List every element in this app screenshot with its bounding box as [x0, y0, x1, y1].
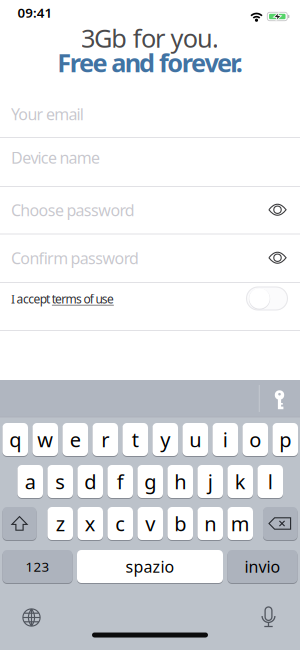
- button[interactable]: g: [137, 465, 163, 498]
- staticText: Your email: [11, 103, 84, 125]
- button[interactable]: Dictation: [251, 602, 285, 636]
- button[interactable]: o: [242, 423, 268, 456]
- button[interactable]: Next keyboard: [14, 600, 48, 634]
- button[interactable]: Show password: [256, 233, 298, 282]
- staticText: 123: [25, 558, 49, 575]
- button[interactable]: a: [17, 465, 43, 498]
- staticText: s: [55, 468, 65, 495]
- staticText: j: [208, 468, 213, 495]
- staticText: Choose password: [11, 199, 135, 221]
- button[interactable]: Device name: [0, 137, 300, 186]
- button[interactable]: y: [152, 423, 178, 456]
- staticText: p: [279, 426, 291, 453]
- staticText: n: [204, 510, 216, 537]
- button[interactable]: Shift: [2, 507, 36, 540]
- button[interactable]: f: [107, 465, 133, 498]
- button[interactable]: q: [2, 423, 28, 456]
- staticText: a: [25, 468, 36, 495]
- button[interactable]: w: [32, 423, 58, 456]
- staticText: Free and forever.: [57, 46, 243, 79]
- button[interactable]: 123: [2, 550, 72, 583]
- staticText: d: [84, 468, 96, 495]
- button[interactable]: Show password: [256, 186, 298, 233]
- button[interactable]: t: [122, 423, 148, 456]
- staticText: 09:41: [18, 4, 52, 21]
- staticText: x: [85, 510, 96, 537]
- staticText: m: [231, 510, 250, 537]
- staticText: y: [160, 426, 170, 453]
- button[interactable]: Choose password: [0, 186, 258, 233]
- button[interactable]: b: [167, 507, 193, 540]
- button[interactable]: x: [77, 507, 103, 540]
- staticText: h: [174, 468, 186, 495]
- staticText: f: [117, 468, 124, 495]
- button[interactable]: s: [47, 465, 73, 498]
- staticText: c: [115, 510, 125, 537]
- button[interactable]: d: [77, 465, 103, 498]
- button[interactable]: u: [182, 423, 208, 456]
- staticText: q: [9, 426, 21, 453]
- button[interactable]: j: [197, 465, 223, 498]
- button[interactable]: r: [92, 423, 118, 456]
- staticText: w: [37, 426, 53, 453]
- button[interactable]: h: [167, 465, 193, 498]
- staticText: r: [101, 426, 109, 453]
- button[interactable]: n: [197, 507, 223, 540]
- staticText: u: [189, 426, 201, 453]
- staticText: I accept terms of use: [11, 291, 114, 307]
- staticText: z: [56, 510, 65, 537]
- staticText: g: [144, 468, 156, 495]
- staticText: b: [174, 510, 186, 537]
- staticText: i: [223, 426, 228, 453]
- button[interactable]: l: [257, 465, 283, 498]
- staticText: e: [70, 426, 81, 453]
- button[interactable]: m: [227, 507, 253, 540]
- staticText: o: [249, 426, 261, 453]
- staticText: l: [268, 468, 273, 495]
- button[interactable]: p: [272, 423, 298, 456]
- staticText: t: [132, 426, 139, 453]
- staticText: k: [235, 468, 246, 495]
- button[interactable]: spazio: [77, 550, 223, 583]
- staticText: Confirm password: [11, 247, 139, 269]
- button[interactable]: k: [227, 465, 253, 498]
- staticText: 3Gb for you.: [81, 21, 219, 55]
- button[interactable]: Confirm password: [0, 233, 258, 282]
- staticText: v: [145, 510, 155, 537]
- button[interactable]: invio: [227, 550, 297, 583]
- staticText: Device name: [11, 147, 100, 168]
- button[interactable]: v: [137, 507, 163, 540]
- button[interactable]: Your email: [0, 89, 300, 137]
- button[interactable]: Delete: [263, 507, 297, 540]
- button[interactable]: c: [107, 507, 133, 540]
- button[interactable]: e: [62, 423, 88, 456]
- button[interactable]: Password AutoFill: [259, 380, 299, 416]
- button[interactable]: I accept terms of use: [246, 286, 288, 310]
- staticText: spazio: [125, 556, 174, 577]
- button[interactable]: z: [47, 507, 73, 540]
- staticText: invio: [244, 556, 280, 577]
- button[interactable]: i: [212, 423, 238, 456]
